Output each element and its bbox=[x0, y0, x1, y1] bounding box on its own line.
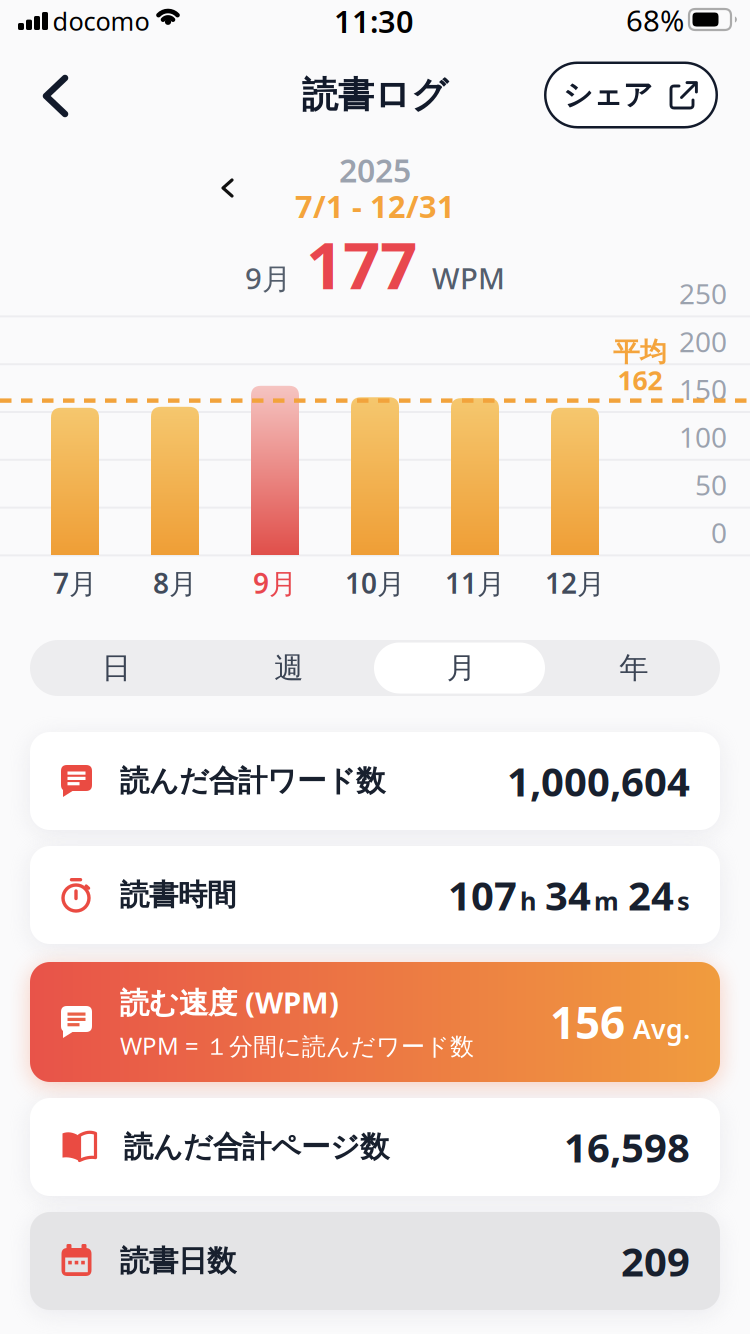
staticText: m bbox=[594, 884, 619, 917]
button[interactable]: 読書時間 bbox=[30, 846, 720, 944]
staticText: 8月 bbox=[153, 564, 197, 602]
staticText: 月 bbox=[447, 650, 476, 686]
staticText: h bbox=[520, 884, 536, 917]
staticText: 177 bbox=[306, 221, 417, 307]
staticText: 読む速度 (WPM) bbox=[120, 982, 339, 1021]
staticText: 50 bbox=[695, 466, 727, 503]
staticText: 10月 bbox=[345, 564, 405, 602]
staticText: 日 bbox=[102, 650, 131, 686]
staticText: 34 bbox=[545, 868, 591, 921]
button[interactable]: 読書日数 bbox=[30, 1212, 720, 1310]
staticText: 読書日数 bbox=[120, 1243, 236, 1279]
button[interactable]: 読んだ合計ページ数 bbox=[30, 1098, 720, 1196]
button[interactable]: 年 bbox=[548, 640, 720, 696]
staticText: 200 bbox=[679, 323, 727, 360]
staticText: 107 bbox=[448, 868, 517, 921]
button[interactable]: 月 bbox=[375, 640, 547, 696]
button[interactable]: 読む速度 (WPM) bbox=[30, 962, 720, 1082]
staticText: Avg. bbox=[633, 1011, 690, 1046]
staticText: 7/1 - 12/31 bbox=[295, 186, 455, 226]
staticText: 16,598 bbox=[564, 1120, 690, 1173]
staticText: 11月 bbox=[445, 564, 505, 602]
staticText: 156 bbox=[550, 993, 625, 1051]
staticText: 1,000,604 bbox=[507, 754, 690, 807]
staticText: 年 bbox=[619, 650, 648, 686]
staticText: 9月 bbox=[245, 258, 291, 297]
staticText: WPM = １分間に読んだワード数 bbox=[120, 1029, 474, 1061]
button[interactable]: シェア bbox=[544, 61, 718, 128]
button[interactable]: Previous period bbox=[220, 177, 236, 199]
staticText: 読書時間 bbox=[120, 877, 236, 913]
staticText: docomo bbox=[52, 4, 149, 38]
button[interactable]: 読んだ合計ワード数 bbox=[30, 732, 720, 830]
staticText: 250 bbox=[679, 275, 727, 312]
staticText: 0 bbox=[711, 514, 727, 551]
staticText: 2025 bbox=[339, 149, 411, 191]
staticText: WPM bbox=[432, 258, 505, 297]
button[interactable]: Back bbox=[41, 73, 71, 119]
staticText: 読んだ合計ページ数 bbox=[124, 1129, 389, 1165]
staticText: 週 bbox=[274, 650, 303, 686]
staticText: 68% bbox=[626, 0, 684, 39]
staticText: 12月 bbox=[545, 564, 605, 602]
staticText: 24 bbox=[628, 868, 674, 921]
staticText: s bbox=[677, 884, 690, 917]
staticText: 11:30 bbox=[334, 1, 414, 41]
staticText: 7月 bbox=[53, 564, 97, 602]
staticText: 読んだ合計ワード数 bbox=[120, 763, 385, 799]
staticText: 162 bbox=[617, 362, 662, 398]
staticText: 9月 bbox=[253, 564, 297, 602]
staticText: 読書ログ bbox=[302, 73, 448, 117]
button[interactable]: 週 bbox=[203, 640, 375, 696]
staticText: 100 bbox=[679, 418, 727, 455]
staticText: シェア bbox=[563, 77, 653, 113]
staticText: 平均 bbox=[613, 336, 667, 368]
button[interactable]: 日 bbox=[30, 640, 202, 696]
staticText: 150 bbox=[679, 370, 727, 408]
staticText: 209 bbox=[621, 1234, 690, 1287]
